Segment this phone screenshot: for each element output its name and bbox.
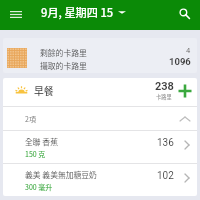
staticText: 卡路里 — [156, 93, 172, 101]
staticText: 全聯 香蕉 — [25, 136, 58, 147]
button[interactable]: Search — [173, 2, 195, 24]
button[interactable]: 早餐 — [3, 78, 197, 106]
staticText: 義美 義美無加糖豆奶 — [25, 169, 97, 180]
staticText: 1096 — [169, 56, 191, 67]
button[interactable]: 全聯 香蕉 — [3, 131, 197, 163]
staticText: 150 克 — [25, 149, 46, 159]
staticText: 136 — [157, 137, 174, 149]
button[interactable]: Menu — [5, 3, 27, 25]
staticText: 4 — [186, 46, 191, 55]
button[interactable]: 9月, 星期四 15 — [41, 0, 126, 27]
button[interactable]: 剩餘的卡路里 — [3, 38, 197, 73]
button[interactable]: 義美 義美無加糖豆奶 — [3, 164, 197, 196]
staticText: 300 毫升 — [25, 182, 53, 192]
staticText: 2項 — [25, 114, 36, 124]
button[interactable]: 2項 — [3, 107, 197, 130]
staticText: 238 — [155, 80, 174, 93]
staticText: 剩餘的卡路里 — [40, 47, 87, 58]
staticText: 早餐 — [34, 84, 54, 98]
button[interactable]: Add food — [177, 83, 193, 99]
staticText: 102 — [157, 170, 174, 182]
staticText: 9月, 星期四 15 — [41, 4, 114, 20]
staticText: 攝取的卡路里 — [40, 60, 87, 71]
